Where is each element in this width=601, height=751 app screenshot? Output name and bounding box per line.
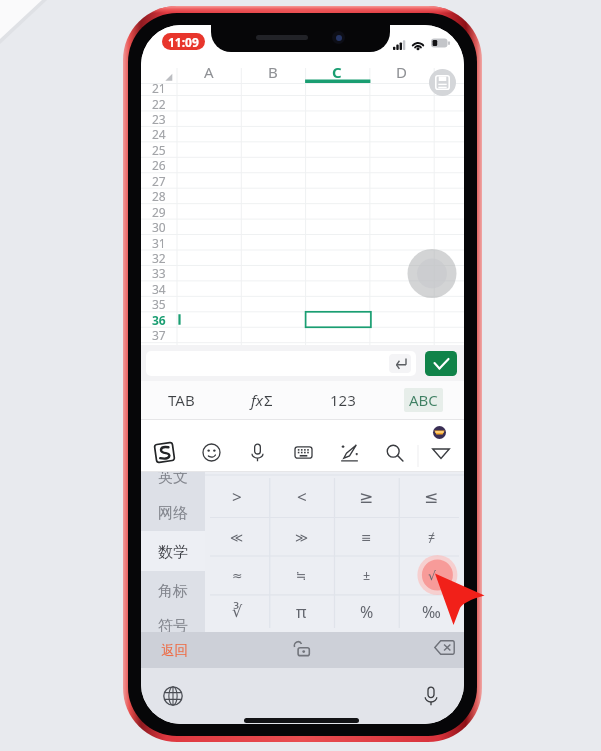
staticText: 返回: [161, 642, 188, 659]
button[interactable]: D: [369, 60, 433, 83]
staticText: 30: [152, 219, 166, 234]
staticText: ±: [363, 567, 371, 584]
staticText: 数学: [158, 543, 188, 562]
staticText: D: [396, 62, 407, 82]
staticText: ≥: [359, 487, 374, 507]
button[interactable]: Backspace: [431, 634, 457, 660]
button[interactable]: More: [418, 426, 464, 479]
button[interactable]: ∛: [205, 595, 269, 628]
button[interactable]: 英文: [141, 472, 205, 495]
button[interactable]: Voice input: [421, 686, 441, 706]
button[interactable]: ‰: [399, 595, 464, 628]
button[interactable]: Handwriting: [326, 426, 372, 479]
staticText: π: [296, 601, 307, 623]
button[interactable]: A: [177, 60, 241, 83]
button[interactable]: Confirm: [425, 351, 457, 376]
staticText: 23: [152, 111, 166, 126]
staticText: √: [428, 568, 436, 583]
staticText: 角标: [158, 582, 188, 601]
staticText: 123: [330, 390, 356, 410]
button[interactable]: C: [305, 60, 369, 83]
staticText: 符号: [158, 617, 188, 632]
button[interactable]: ±: [334, 556, 399, 595]
button[interactable]: ≤: [399, 475, 464, 518]
button[interactable]: 符号: [141, 608, 205, 632]
staticText: <: [297, 485, 307, 508]
button[interactable]: ≪: [205, 518, 269, 557]
staticText: ≤: [424, 487, 439, 507]
staticText: 11:09: [168, 34, 199, 50]
staticText: ≒: [296, 568, 307, 583]
button[interactable]: Switch language: [163, 686, 183, 706]
staticText: %: [360, 601, 374, 623]
staticText: 22: [152, 96, 166, 111]
button[interactable]: Emoji: [188, 426, 234, 479]
button[interactable]: TAB: [141, 381, 221, 419]
staticText: >: [232, 485, 242, 508]
staticText: 24: [152, 126, 166, 141]
button[interactable]: New line: [146, 351, 416, 376]
button[interactable]: 网络: [141, 495, 205, 531]
staticText: ≪: [230, 530, 244, 545]
button[interactable]: ≒: [269, 556, 334, 595]
button[interactable]: New line: [389, 354, 411, 373]
staticText: A: [204, 62, 214, 82]
button[interactable]: >: [205, 475, 269, 518]
button[interactable]: <: [269, 475, 334, 518]
button[interactable]: ≈: [205, 556, 269, 595]
staticText: ≫: [295, 530, 309, 545]
staticText: 31: [152, 235, 166, 250]
staticText: 28: [152, 188, 166, 203]
staticText: fx: [251, 390, 264, 410]
staticText: Σ: [264, 390, 273, 410]
button[interactable]: 返回: [152, 635, 196, 665]
staticText: 网络: [158, 504, 188, 523]
staticText: ≠: [428, 529, 436, 546]
staticText: B: [268, 62, 278, 82]
button[interactable]: Sogou input: [141, 426, 188, 479]
staticText: 英文: [158, 472, 188, 487]
staticText: 25: [152, 142, 166, 157]
button[interactable]: Save: [429, 69, 456, 96]
button[interactable]: Unlock keyboard: [288, 635, 314, 661]
staticText: 26: [152, 157, 166, 172]
button[interactable]: ABC: [383, 381, 464, 419]
staticText: 29: [152, 204, 166, 219]
staticText: 27: [152, 173, 166, 188]
button[interactable]: 角标: [141, 573, 205, 609]
staticText: ∛: [232, 602, 243, 621]
staticText: 36: [152, 312, 166, 327]
staticText: C: [332, 62, 342, 82]
button[interactable]: √: [399, 556, 464, 595]
button[interactable]: 数学: [141, 534, 205, 570]
button[interactable]: %: [334, 595, 399, 628]
button[interactable]: Search: [372, 426, 418, 479]
button[interactable]: 123: [302, 381, 383, 419]
button[interactable]: ≡: [334, 518, 399, 557]
button[interactable]: ≥: [334, 475, 399, 518]
button[interactable]: ≫: [269, 518, 334, 557]
staticText: ABC: [409, 390, 438, 410]
button[interactable]: 11:09: [162, 33, 205, 50]
button[interactable]: fx: [221, 381, 302, 419]
button[interactable]: Voice: [234, 426, 280, 479]
staticText: 34: [152, 281, 166, 296]
staticText: ‰: [422, 601, 441, 623]
staticText: 37: [152, 327, 166, 342]
button[interactable]: ≠: [399, 518, 464, 557]
button[interactable]: B: [241, 60, 305, 83]
staticText: TAB: [168, 390, 195, 410]
staticText: ≈: [232, 568, 243, 583]
staticText: 21: [152, 80, 166, 95]
staticText: 35: [152, 296, 166, 311]
staticText: ≡: [361, 530, 372, 545]
staticText: 32: [152, 250, 166, 265]
button[interactable]: Keyboard: [280, 426, 326, 479]
button[interactable]: π: [269, 595, 334, 628]
staticText: 33: [152, 265, 166, 280]
